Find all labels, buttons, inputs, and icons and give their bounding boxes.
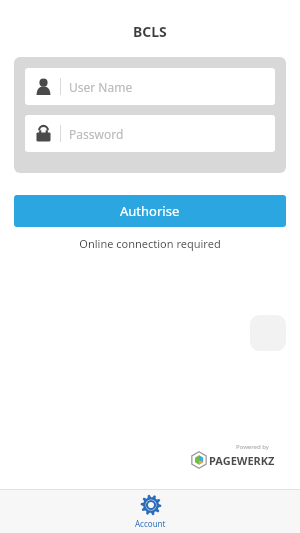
staticText: PAGEWERKZ bbox=[209, 453, 275, 468]
staticText: BCLS bbox=[133, 22, 167, 41]
staticText: Powered by bbox=[236, 443, 269, 451]
staticText: User Name bbox=[69, 79, 133, 95]
staticText: Authorise bbox=[120, 202, 180, 220]
button[interactable]: User Name bbox=[25, 68, 275, 105]
button[interactable]: Account bbox=[115, 491, 186, 532]
staticText: Online connection required bbox=[79, 236, 221, 251]
button[interactable]: Password bbox=[25, 115, 275, 152]
button[interactable]: Authorise bbox=[14, 195, 286, 227]
staticText: Password bbox=[69, 126, 124, 142]
staticText: Account bbox=[135, 518, 166, 529]
